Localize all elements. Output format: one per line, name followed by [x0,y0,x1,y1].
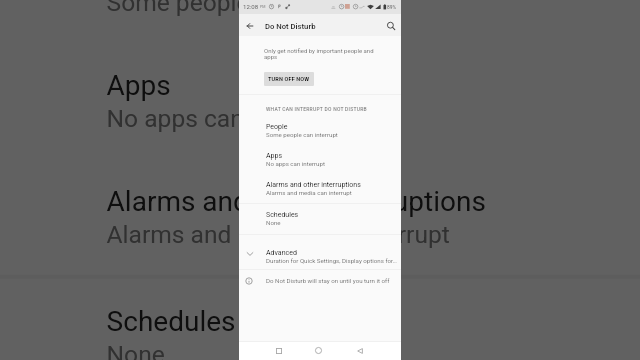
staticText: Duration for Quick Settings, Display opt… [266,257,397,264]
staticText: Alarms and other interruptions [266,181,361,189]
button[interactable]: Back [353,344,366,357]
button[interactable]: Apps [239,146,401,171]
button[interactable]: Schedules [0,283,640,360]
staticText: Alarms and other interruptions [107,187,487,219]
button[interactable]: Search [383,18,399,34]
button[interactable]: Advanced [239,241,401,267]
staticText: Apps [107,71,175,103]
staticText: Advanced [266,249,297,257]
staticText: No apps can interrupt [266,160,325,167]
button[interactable]: TURN OFF NOW [264,72,314,86]
button[interactable]: Schedules [239,205,401,230]
staticText: Do Not Disturb [265,22,316,31]
staticText: Alarms and media can interrupt [266,189,352,196]
staticText: Apps [266,152,283,160]
staticText: 89% [387,4,397,10]
staticText: Only get notified by important people an… [264,47,378,61]
button[interactable]: Home [312,344,325,357]
staticText: None [266,219,281,226]
button[interactable]: Recent apps [272,344,285,357]
staticText: Some people can interrupt [266,131,338,138]
staticText: WHAT CAN INTERRUPT DO NOT DISTURB [266,106,367,112]
staticText: PM [260,5,266,9]
staticText: 12:08 [243,3,259,10]
staticText: Schedules [107,307,239,339]
button[interactable]: Alarms and other interruptions [239,175,401,200]
button[interactable]: People [0,0,640,31]
button[interactable]: Alarms and other interruptions [0,163,640,263]
staticText: Do Not Disturb will stay on until you tu… [266,277,390,284]
button[interactable]: People [239,117,401,142]
staticText: None [107,339,167,360]
staticText: Alarms and media can interrupt [107,219,451,247]
staticText: No apps can interrupt [107,103,343,131]
button[interactable]: Apps [0,47,640,147]
staticText: TURN OFF NOW [268,76,310,83]
staticText: Some people can interrupt [107,0,395,15]
button[interactable]: Navigate up [242,18,258,34]
staticText: Schedules [266,211,299,219]
staticText: People [266,123,288,131]
